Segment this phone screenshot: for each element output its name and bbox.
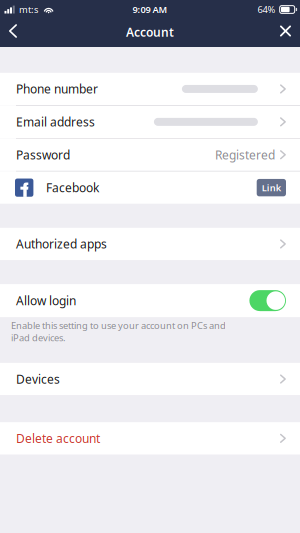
staticText: Authorized apps [16, 236, 107, 252]
button[interactable]: Email address [0, 106, 300, 138]
button[interactable]: Phone number [0, 73, 300, 105]
button[interactable]: Devices [0, 363, 300, 395]
staticText: mt:s [19, 3, 38, 16]
staticText: Enable this setting to use your account … [11, 319, 226, 344]
staticText: Phone number [16, 81, 98, 97]
button[interactable]: Back [3, 19, 31, 47]
staticText: Password [16, 147, 70, 163]
button[interactable]: Password [0, 139, 300, 171]
staticText: 9:09 AM [132, 3, 167, 16]
button[interactable]: Allow login [249, 290, 286, 311]
button[interactable]: Delete account [0, 422, 300, 454]
button[interactable]: Close [270, 19, 298, 47]
staticText: Devices [16, 371, 60, 387]
staticText: Link [262, 181, 281, 194]
staticText: Registered [215, 147, 275, 163]
staticText: Account [126, 24, 174, 40]
button[interactable]: Link [257, 179, 286, 196]
staticText: Email address [16, 114, 95, 130]
staticText: Delete account [16, 430, 100, 446]
staticText: Facebook [46, 180, 99, 196]
staticText: Allow login [16, 293, 76, 308]
staticText: 64% [257, 3, 275, 16]
button[interactable]: Authorized apps [0, 228, 300, 260]
